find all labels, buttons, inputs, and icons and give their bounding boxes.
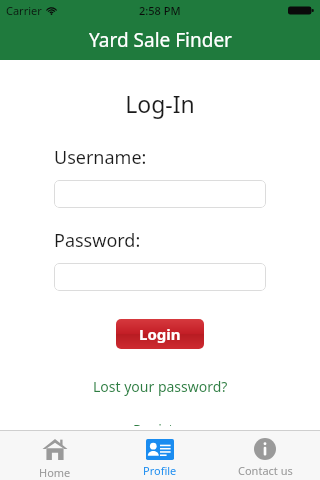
button[interactable] bbox=[54, 263, 266, 291]
button[interactable]: Profile bbox=[110, 431, 210, 480]
staticText: Lost your password? bbox=[93, 377, 228, 396]
staticText: Yard Sale Finder bbox=[89, 27, 232, 53]
staticText: Login bbox=[139, 324, 181, 344]
button[interactable]: Lost your password? bbox=[89, 373, 232, 400]
other: Contact us bbox=[254, 438, 276, 460]
staticText: Password: bbox=[54, 228, 141, 253]
staticText: Username: bbox=[54, 145, 147, 170]
staticText: Register bbox=[133, 420, 188, 426]
staticText: Profile bbox=[143, 463, 177, 478]
button[interactable] bbox=[54, 180, 266, 208]
staticText: 2:58 PM bbox=[139, 3, 181, 18]
staticText: Log-In bbox=[0, 88, 320, 119]
button[interactable]: Home bbox=[5, 431, 105, 480]
staticText: Contact us bbox=[238, 463, 293, 478]
staticText: Home bbox=[39, 465, 71, 480]
other: Profile bbox=[146, 439, 174, 460]
button[interactable]: Contact us bbox=[215, 431, 315, 480]
other: Home bbox=[42, 436, 68, 462]
button[interactable]: Register bbox=[129, 416, 192, 430]
staticText: Carrier bbox=[6, 3, 42, 18]
button[interactable]: Login bbox=[116, 319, 204, 349]
